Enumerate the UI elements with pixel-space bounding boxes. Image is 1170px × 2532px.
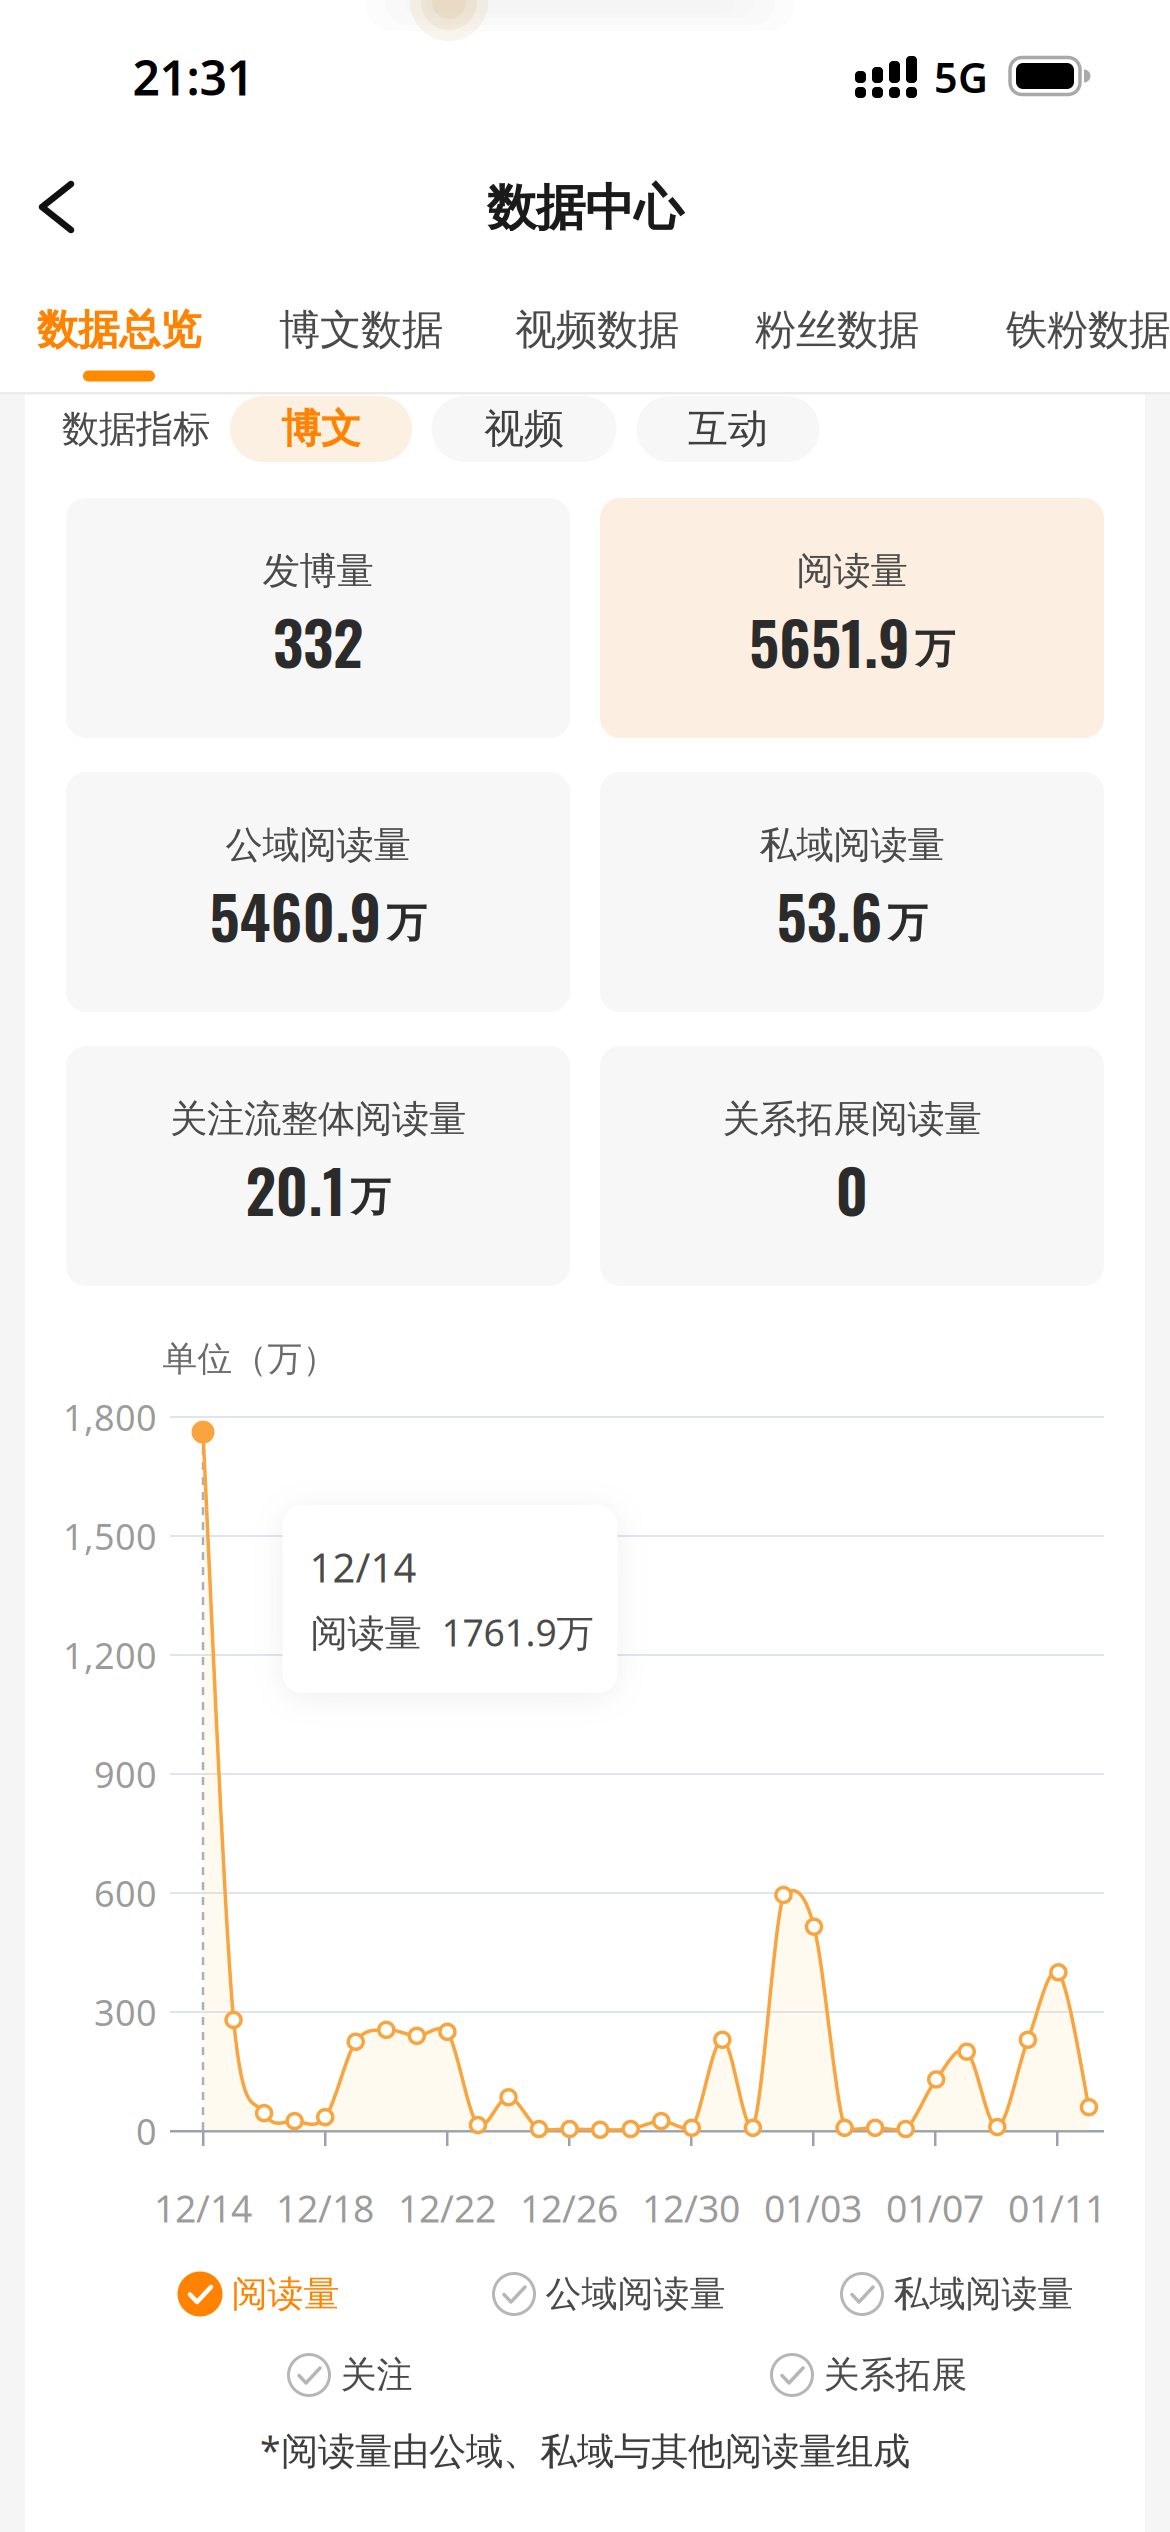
staticText: 1,800 [63, 1393, 157, 1441]
staticText: 粉丝数据 [755, 305, 919, 355]
staticText: 发博量 [262, 548, 373, 594]
button[interactable]: 公域阅读量 [66, 772, 570, 1012]
staticText: 数据中心 [487, 178, 683, 238]
staticText: 视频数据 [515, 305, 679, 355]
staticText: 关注流整体阅读量 [170, 1096, 466, 1142]
staticText: 博文 [281, 404, 361, 453]
button[interactable]: 私域阅读量 [600, 772, 1104, 1012]
staticText: 阅读量 [796, 548, 907, 594]
staticText: 5460.9 [209, 870, 381, 959]
staticText: 数据总览 [37, 305, 201, 355]
staticText: 关系拓展阅读量 [722, 1096, 981, 1142]
staticText: 关注 [340, 2353, 412, 2397]
staticText: 博文数据 [279, 305, 443, 355]
staticText: 01/11 [1008, 2183, 1106, 2233]
staticText: 21:31 [132, 45, 253, 109]
staticText: 单位（万） [162, 1338, 337, 1380]
button[interactable]: 视频 [431, 396, 616, 462]
button[interactable]: 关系拓展 [769, 2347, 967, 2403]
staticText: 5651.9 [749, 596, 910, 685]
button[interactable]: 互动 [636, 396, 819, 462]
staticText: 12/18 [276, 2183, 374, 2233]
button[interactable]: 关注流整体阅读量 [66, 1046, 570, 1286]
staticText: 12/22 [398, 2183, 496, 2233]
button[interactable]: 博文数据 [261, 286, 461, 374]
staticText: 数据指标 [62, 406, 210, 452]
staticText: 互动 [688, 404, 768, 453]
staticText: 300 [94, 1988, 157, 2036]
button[interactable]: 博文 [230, 396, 412, 462]
staticText: 12/14 [154, 2183, 252, 2233]
staticText: 600 [94, 1869, 157, 1917]
staticText: 公域阅读量 [225, 822, 410, 868]
button[interactable]: 粉丝数据 [737, 286, 937, 374]
staticText: 私域阅读量 [759, 822, 944, 868]
button[interactable]: 数据总览 [19, 286, 219, 374]
staticText: 12/30 [642, 2183, 740, 2233]
staticText: 1,500 [63, 1512, 157, 1560]
button[interactable]: 发博量 [66, 498, 570, 738]
button[interactable]: 阅读量 [600, 498, 1104, 738]
button[interactable]: 私域阅读量 [839, 2266, 1073, 2322]
staticText: 01/03 [764, 2183, 862, 2233]
staticText: 0 [835, 1144, 868, 1233]
button[interactable]: 阅读量 [177, 2266, 339, 2322]
staticText: 公域阅读量 [545, 2272, 725, 2316]
staticText: 阅读量 1761.9万 [310, 1607, 593, 1657]
staticText: 1,200 [63, 1631, 157, 1679]
staticText: 万 [887, 898, 927, 947]
button[interactable]: 视频数据 [497, 286, 697, 374]
staticText: 5G [934, 50, 988, 104]
staticText: *阅读量由公域、私域与其他阅读量组成 [260, 2425, 910, 2475]
button[interactable]: 关系拓展阅读量 [600, 1046, 1104, 1286]
staticText: 53.6 [776, 870, 882, 959]
staticText: 12/26 [520, 2183, 618, 2233]
staticText: 0 [136, 2107, 157, 2155]
button[interactable]: 关注 [286, 2347, 412, 2403]
staticText: 视频 [484, 404, 564, 453]
staticText: 私域阅读量 [893, 2272, 1073, 2316]
staticText: 900 [94, 1750, 157, 1798]
button[interactable]: 铁粉数据 [988, 286, 1170, 374]
staticText: 万 [386, 898, 426, 947]
staticText: 阅读量 [231, 2272, 339, 2316]
staticText: 01/07 [886, 2183, 984, 2233]
staticText: 万 [350, 1172, 390, 1221]
staticText: 20.1 [245, 1144, 345, 1233]
staticText: 铁粉数据 [1006, 305, 1170, 355]
staticText: 万 [915, 624, 955, 673]
button[interactable]: 公域阅读量 [491, 2266, 725, 2322]
staticText: 12/14 [309, 1540, 416, 1593]
staticText: 332 [273, 596, 363, 685]
staticText: 关系拓展 [823, 2353, 967, 2397]
